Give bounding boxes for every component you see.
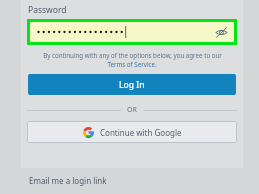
button[interactable]: Terms of Service. [107, 60, 157, 68]
staticText: Log In [119, 79, 145, 91]
button[interactable]: Log In [28, 74, 236, 95]
staticText: OR [127, 105, 137, 115]
button[interactable]: Hide password [30, 22, 234, 42]
staticText: By continuing with any of the options be… [43, 51, 222, 59]
staticText: Terms of Service. [107, 60, 157, 68]
staticText: Email me a login link [29, 175, 107, 186]
button[interactable]: Hide password [211, 22, 231, 42]
staticText: Password [28, 4, 67, 16]
button[interactable]: Email me a login link [29, 175, 107, 186]
button[interactable]: Continue with Google [27, 121, 237, 143]
staticText: Continue with Google [100, 127, 182, 138]
